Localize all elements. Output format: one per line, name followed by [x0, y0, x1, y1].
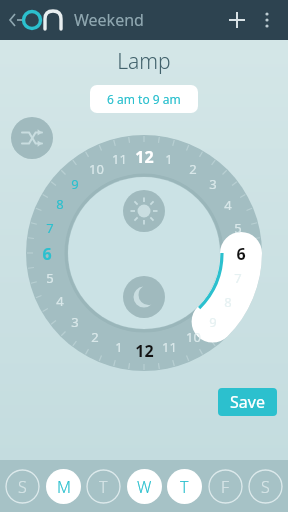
staticText: 6 am to 9 am — [107, 91, 181, 107]
button[interactable]: S — [5, 469, 40, 504]
staticText: 7 — [46, 219, 54, 237]
staticText: 5 — [234, 219, 242, 237]
button[interactable]: S — [248, 469, 283, 504]
button[interactable]: T — [86, 469, 121, 504]
staticText: W — [137, 476, 152, 498]
staticText: 9 — [71, 175, 79, 193]
staticText: Weekend — [74, 9, 144, 31]
staticText: 8 — [224, 293, 232, 311]
staticText: 4 — [56, 292, 64, 310]
staticText: 11 — [162, 338, 177, 356]
staticText: 1 — [165, 150, 173, 168]
button[interactable]: Save — [218, 388, 277, 416]
staticText: 11 — [112, 150, 127, 168]
button[interactable]: More options — [254, 7, 280, 33]
staticText: 3 — [209, 175, 217, 193]
staticText: 1 — [115, 338, 123, 356]
staticText: 2 — [189, 160, 197, 178]
staticText: 6 — [42, 243, 52, 263]
staticText: T — [99, 476, 108, 498]
staticText: 8 — [56, 195, 64, 213]
button[interactable]: 6 am to 9 am — [90, 85, 198, 113]
staticText: F — [221, 476, 230, 498]
button[interactable]: Up — [8, 5, 66, 35]
staticText: S — [261, 476, 270, 498]
staticText: 10 — [89, 160, 104, 178]
staticText: T — [180, 476, 189, 498]
staticText: 2 — [91, 328, 99, 346]
staticText: 9 — [209, 313, 217, 331]
staticText: M — [57, 476, 71, 498]
staticText: 12 — [135, 340, 154, 360]
button[interactable]: Add — [220, 3, 254, 37]
staticText: S — [18, 476, 27, 498]
button[interactable]: Shuffle — [11, 117, 53, 159]
button[interactable]: W — [127, 469, 162, 504]
staticText: Save — [230, 391, 265, 413]
staticText: Lamp — [0, 47, 288, 76]
staticText: 6 — [236, 243, 246, 263]
staticText: 12 — [135, 146, 154, 166]
button[interactable]: Schedule dial — [0, 119, 288, 387]
staticText: 3 — [71, 313, 79, 331]
staticText: 4 — [224, 196, 232, 214]
button[interactable]: F — [208, 469, 243, 504]
button[interactable]: M — [46, 469, 81, 504]
staticText: 5 — [46, 269, 54, 287]
button[interactable]: T — [167, 469, 202, 504]
staticText: 10 — [186, 328, 201, 346]
staticText: 7 — [234, 269, 242, 287]
